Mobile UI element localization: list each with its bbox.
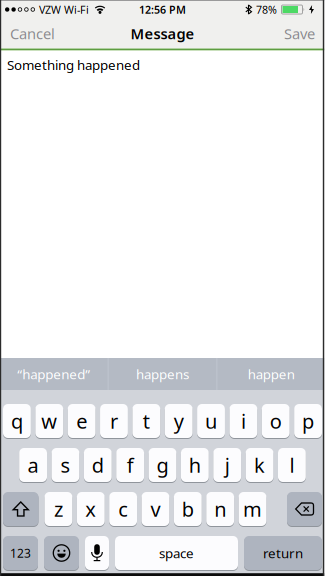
staticText: VZW Wi-Fi [39,2,89,17]
button[interactable]: n [206,492,234,526]
button[interactable]: u [197,404,225,438]
staticText: Cancel [10,24,55,43]
staticText: t [143,408,150,434]
staticText: u [205,408,217,434]
staticText: h [189,452,201,478]
button[interactable]: w [35,404,63,438]
staticText: Message [130,24,194,43]
staticText: Save [284,24,315,43]
button[interactable]: o [262,404,290,438]
staticText: j [225,452,230,478]
button[interactable]: Cancel [10,24,55,43]
button[interactable]: g [149,448,176,482]
staticText: happen [248,365,295,383]
button[interactable]: b [174,492,202,526]
staticText: b [182,496,194,522]
button[interactable]: p [294,404,322,438]
button[interactable]: return [244,536,322,570]
staticText: r [110,408,118,434]
button[interactable]: a [19,448,47,482]
staticText: q [11,408,23,434]
button[interactable]: Save [284,24,315,43]
staticText: g [156,452,168,478]
button[interactable]: q [3,404,31,438]
staticText: 78% [256,2,277,17]
staticText: x [85,496,96,522]
staticText: 123 [10,545,31,561]
button[interactable]: 123 [3,536,38,570]
staticText: o [270,408,282,434]
button[interactable]: “happened” [0,358,108,390]
staticText: m [243,496,262,522]
button[interactable]: j [213,448,241,482]
button[interactable]: f [116,448,144,482]
button[interactable]: k [246,448,273,482]
button[interactable]: y [165,404,193,438]
staticText: “happened” [17,365,90,383]
button[interactable]: e [68,404,96,438]
button[interactable]: x [77,492,105,526]
button[interactable]: m [239,492,266,526]
button[interactable]: h [181,448,209,482]
button[interactable]: happen [217,358,325,390]
button[interactable]: i [229,404,257,438]
staticText: s [60,452,70,478]
staticText: y [174,408,184,434]
button[interactable]: c [109,492,137,526]
button[interactable]: s [51,448,79,482]
button[interactable]: z [44,492,72,526]
staticText: w [41,408,57,434]
button[interactable]: Emoji [44,536,79,570]
staticText: 12:56 PM [139,2,186,17]
staticText: k [254,452,265,478]
staticText: n [214,496,226,522]
button[interactable]: r [100,404,128,438]
button[interactable]: t [132,404,160,438]
staticText: c [118,496,128,522]
staticText: happens [136,365,189,383]
staticText: d [92,452,104,478]
staticText: l [289,452,294,478]
staticText: Something happened [7,56,140,74]
staticText: z [54,496,63,522]
button[interactable]: Dictate [85,536,109,570]
staticText: e [76,408,87,434]
staticText: space [159,544,194,562]
staticText: p [302,408,314,434]
button[interactable]: l [278,448,306,482]
staticText: v [150,496,160,522]
button[interactable]: Shift [3,492,38,526]
button[interactable]: happens [109,358,216,390]
staticText: return [263,544,303,562]
staticText: a [28,452,39,478]
button[interactable]: space [115,536,238,570]
button[interactable]: d [84,448,112,482]
staticText: f [127,452,134,478]
button[interactable]: v [142,492,169,526]
button[interactable]: Delete [287,492,322,526]
staticText: i [241,408,246,434]
